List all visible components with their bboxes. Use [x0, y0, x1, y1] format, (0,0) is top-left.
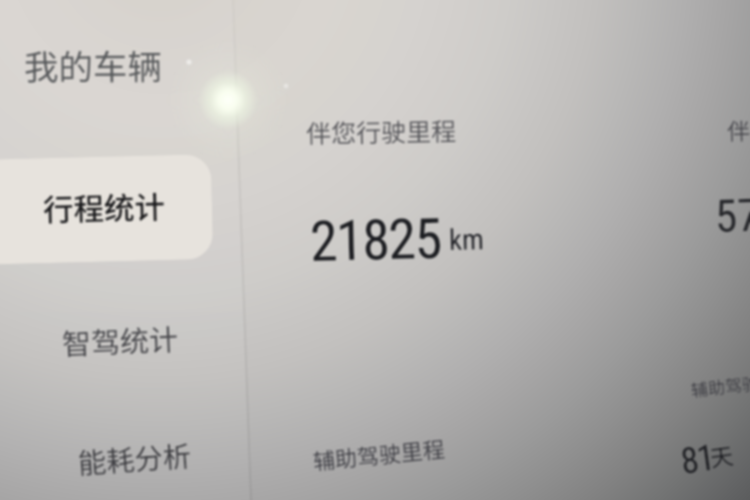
staticText: 我的车辆: [24, 39, 162, 90]
staticText: 81: [678, 437, 717, 483]
button[interactable]: 智驾统计: [30, 300, 205, 372]
button[interactable]: 辅助驾驶里程: [290, 420, 620, 500]
button[interactable]: 辅助驾驶里程: [660, 360, 750, 500]
button[interactable]: 能耗分析: [46, 420, 221, 494]
staticText: 57: [714, 188, 750, 243]
button[interactable]: 伴您行驶里程: [290, 96, 620, 296]
staticText: km: [449, 222, 484, 257]
staticText: 智驾统计: [61, 316, 180, 363]
staticText: 辅助驾驶里程: [311, 431, 447, 476]
staticText: 伴您行驶里程: [306, 112, 457, 150]
staticText: 21825: [309, 206, 442, 275]
staticText: 天: [708, 437, 735, 473]
staticText: 行程统计: [42, 183, 165, 230]
button[interactable]: 伴您行驶里程: [660, 96, 750, 296]
staticText: 能耗分析: [77, 433, 193, 482]
staticText: 伴您行驶里程: [727, 111, 750, 146]
staticText: 辅助驾驶里程: [690, 367, 750, 402]
button[interactable]: 行程统计: [0, 154, 213, 265]
